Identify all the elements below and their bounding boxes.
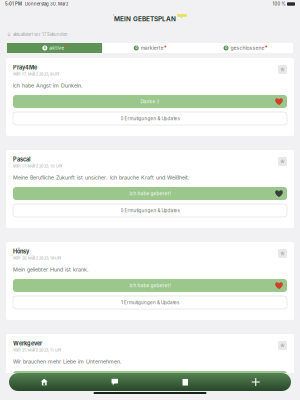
staticText: Ich habe Angst im Dunkeln.	[13, 82, 83, 89]
staticText: vom 21. März 2023, 11 Uhr	[13, 348, 62, 352]
button[interactable]: 1 Ermutigungen & Updates	[13, 296, 287, 309]
button[interactable]: Markieren	[278, 157, 287, 166]
button[interactable]: Markieren	[278, 249, 287, 258]
staticText: Werkgever	[13, 340, 42, 347]
staticText: 5:01 PM	[5, 1, 22, 7]
staticText: vom 17. März 2023, 10 Uhr	[13, 164, 63, 168]
button[interactable]: Markieren	[278, 65, 287, 74]
staticText: 0 Ermutigungen & Updates	[120, 208, 179, 213]
staticText: aktive	[49, 45, 64, 51]
staticText: ʾ	[113, 13, 114, 20]
button[interactable]: 0 Ermutigungen & Updates	[13, 112, 287, 125]
staticText: Meine Berufliche Zukunft ist unsicher. I…	[13, 174, 190, 181]
button[interactable]: 0 Ermutigungen & Updates	[13, 388, 287, 400]
staticText: MEIN GEBETSPLAN	[114, 15, 176, 23]
staticText: 0 Ermutigungen & Updates	[120, 392, 179, 397]
button[interactable]: 8	[7, 43, 102, 53]
staticText: ↓	[7, 32, 11, 37]
button[interactable]: Start	[9, 373, 79, 391]
staticText: aktualisiert vor 17 Sekunden	[13, 32, 68, 37]
button[interactable]: 0	[102, 43, 198, 53]
staticText: Danke :)	[140, 99, 159, 104]
staticText: Donnerstag 30. März	[22, 1, 68, 7]
staticText: ʿ	[181, 16, 182, 22]
staticText: Wir brauchen mehr Liebe im Unternehmen.	[13, 358, 122, 365]
button[interactable]: Ich habe gebetet!	[13, 279, 287, 292]
staticText: Ich habe gebetet!	[129, 375, 170, 380]
button[interactable]: Danke :)	[13, 95, 287, 108]
staticText: markierte	[141, 45, 164, 51]
button[interactable]: 0	[198, 43, 293, 53]
staticText: 0	[135, 46, 137, 50]
button[interactable]: Ich habe gebetet!	[13, 371, 287, 384]
staticText: 8	[44, 46, 46, 50]
staticText: Ich habe gebetet!	[129, 283, 170, 288]
staticText: geschlossene	[230, 45, 264, 51]
staticText: 100 %	[272, 1, 285, 7]
button[interactable]: Hinzufügen	[220, 373, 291, 391]
staticText: Pray4Me	[13, 64, 37, 71]
button[interactable]: Ich habe gebetet!	[13, 187, 287, 200]
button[interactable]: Nachrichten	[79, 373, 150, 391]
staticText: 0 Ermutigungen & Updates	[120, 116, 179, 121]
staticText: Pascal	[13, 156, 31, 163]
staticText: Mein geliebter Hund ist krank.	[13, 266, 89, 273]
staticText: 1 Ermutigungen & Updates	[121, 300, 179, 305]
button[interactable]: Markieren	[278, 341, 287, 350]
staticText: Hönsy	[13, 248, 29, 255]
staticText: Ich habe gebetet!	[129, 191, 170, 196]
button[interactable]: 0 Ermutigungen & Updates	[13, 204, 287, 217]
staticText: vom 17. März 2023, 9 Uhr	[13, 72, 60, 76]
staticText: vom 20. März 2023, 18 Uhr	[13, 256, 62, 260]
staticText: 0	[225, 46, 227, 50]
button[interactable]: Gebetsliste	[150, 373, 220, 391]
